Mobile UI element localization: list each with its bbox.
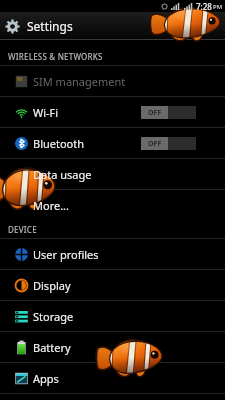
button[interactable]: Battery (0, 332, 225, 363)
staticText: Wi-Fi (33, 105, 59, 120)
button[interactable]: Storage (0, 301, 225, 332)
staticText: SIM management (33, 74, 126, 89)
staticText: Apps (33, 371, 59, 386)
button[interactable]: Settings (5, 18, 73, 34)
staticText: OFF (148, 108, 162, 118)
button[interactable]: Wi-Fi (0, 97, 225, 128)
staticText: Data usage (33, 167, 92, 182)
button[interactable]: More... (0, 190, 225, 221)
button[interactable]: Off (141, 137, 196, 150)
button[interactable]: Off (141, 106, 196, 119)
button[interactable]: Bluetooth (0, 128, 225, 159)
button[interactable]: User profiles (0, 239, 225, 270)
staticText: Settings (27, 18, 73, 34)
staticText: User profiles (33, 247, 99, 262)
button[interactable]: Data usage (0, 159, 225, 190)
staticText: Storage (33, 309, 74, 324)
button[interactable]: SIM management (0, 66, 225, 97)
staticText: 7:28 (196, 1, 212, 12)
staticText: Bluetooth (33, 136, 85, 151)
button[interactable]: Display (0, 270, 225, 301)
staticText: DEVICE (8, 224, 37, 235)
staticText: OFF (148, 139, 162, 149)
staticText: More... (33, 198, 70, 213)
staticText: WIRELESS & NETWORKS (8, 51, 103, 62)
staticText: Battery (33, 340, 71, 355)
staticText: PM (213, 3, 223, 11)
button[interactable]: Apps (0, 363, 225, 394)
staticText: Display (33, 278, 71, 293)
